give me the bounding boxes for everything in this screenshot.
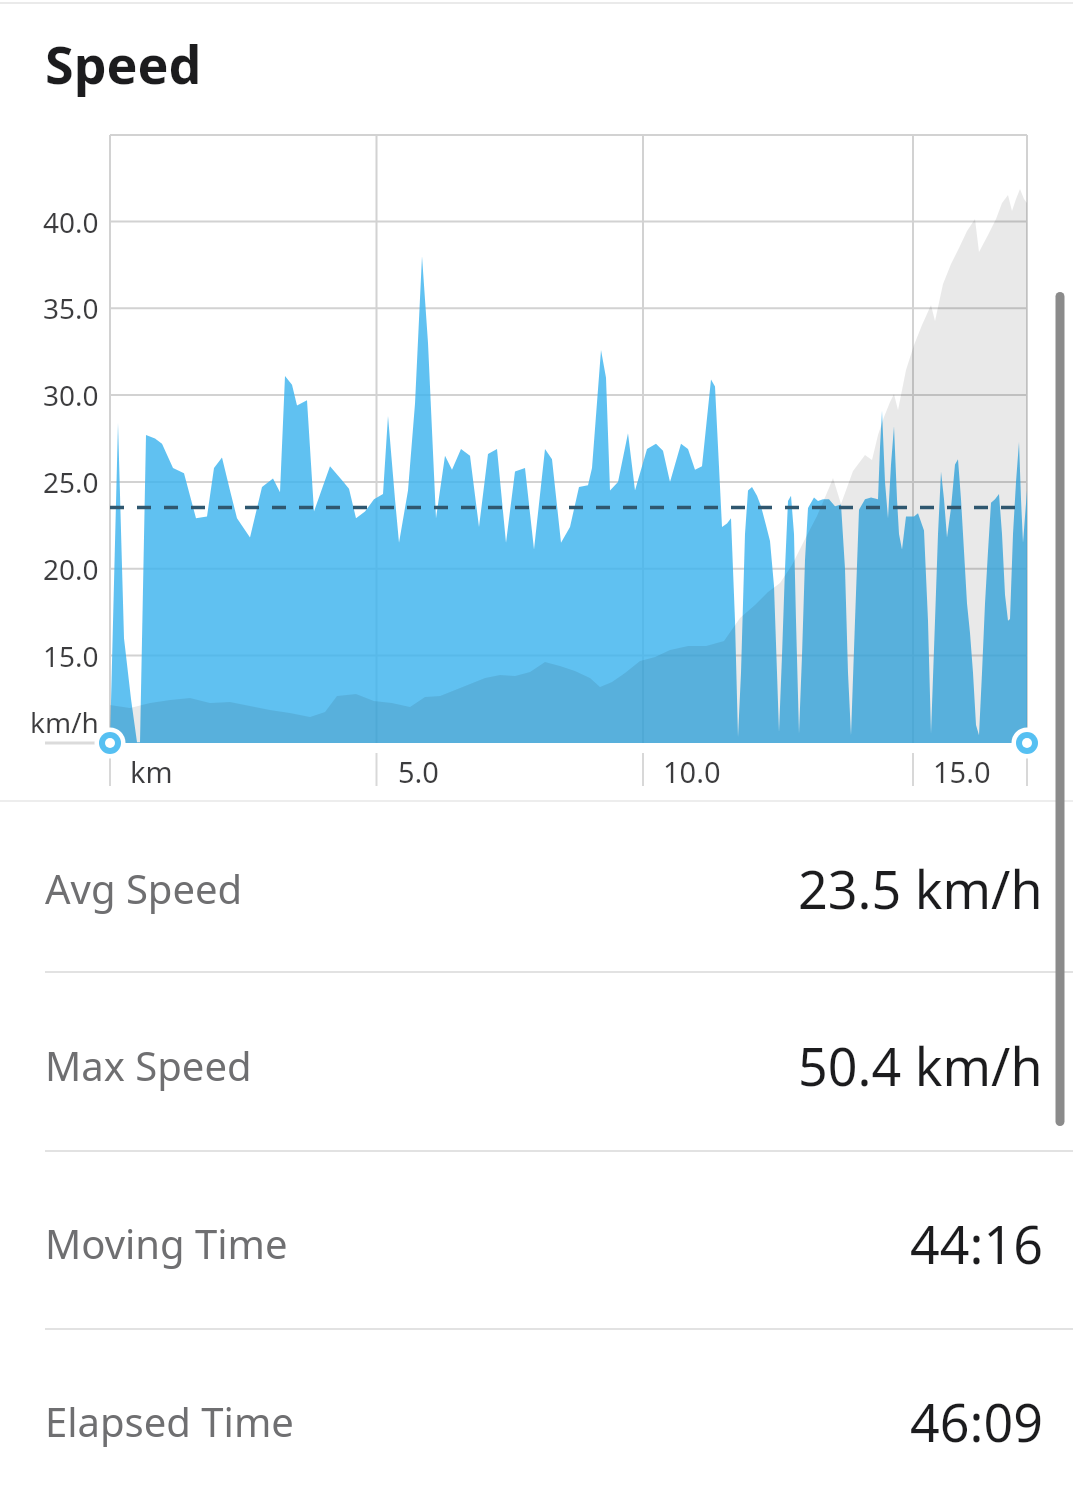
staticText: Max Speed — [45, 1038, 252, 1092]
staticText: 15.0 — [933, 752, 991, 788]
staticText: km — [130, 752, 173, 788]
staticText: Avg Speed — [45, 861, 243, 915]
staticText: 15.0 — [43, 637, 99, 675]
button[interactable]: Avg Speed — [0, 802, 1073, 974]
staticText: 5.0 — [398, 752, 439, 788]
staticText: 25.0 — [43, 463, 99, 501]
button[interactable]: Max Speed — [0, 979, 1073, 1151]
staticText: Elapsed Time — [45, 1394, 294, 1448]
staticText: km/h — [30, 703, 99, 741]
button[interactable]: Moving Time — [0, 1157, 1073, 1329]
staticText: 10.0 — [663, 752, 721, 788]
staticText: Speed — [45, 28, 202, 99]
staticText: 30.0 — [43, 376, 99, 414]
button[interactable]: Elapsed Time — [0, 1335, 1073, 1500]
staticText: 35.0 — [43, 289, 99, 327]
staticText: 46:09 — [910, 1386, 1043, 1457]
staticText: 23.5 km/h — [798, 853, 1043, 924]
staticText: 44:16 — [910, 1208, 1043, 1279]
staticText: 40.0 — [43, 203, 99, 241]
staticText: 50.4 km/h — [798, 1030, 1043, 1101]
staticText: 20.0 — [43, 550, 99, 588]
staticText: Moving Time — [45, 1216, 288, 1270]
